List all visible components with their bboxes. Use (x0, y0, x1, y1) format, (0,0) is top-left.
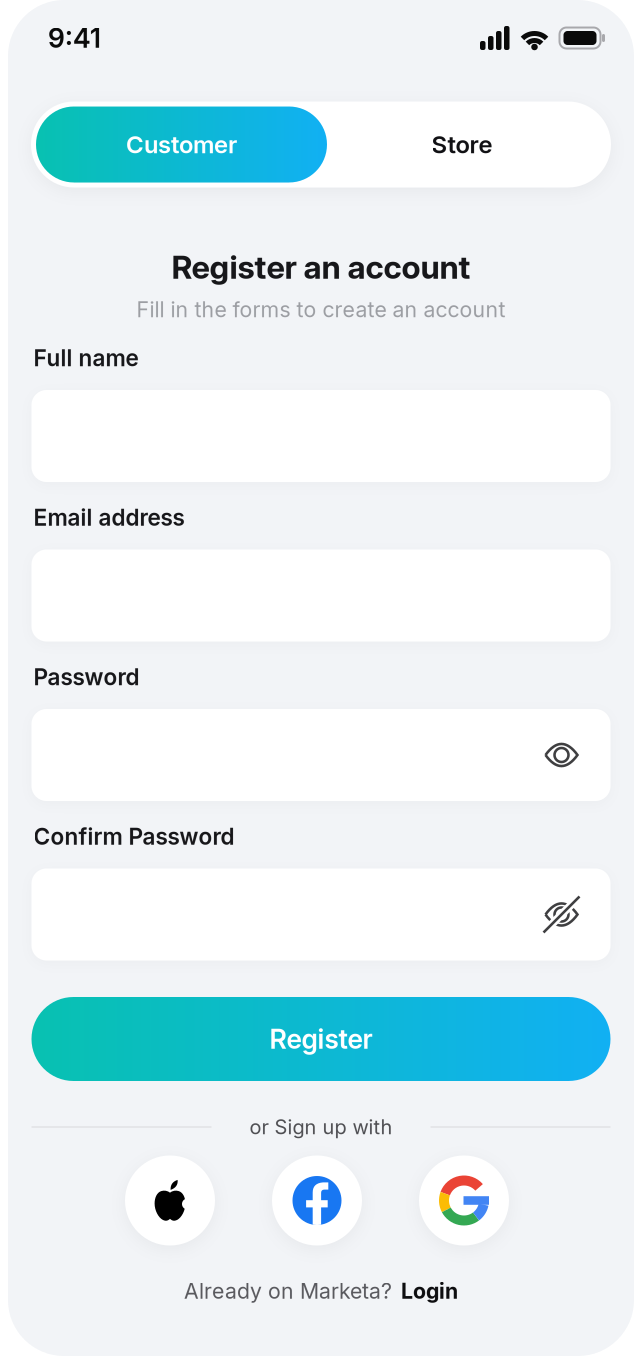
staticText: 9:41 (48, 22, 101, 54)
staticText: Store (431, 130, 492, 159)
staticText: Email address (33, 504, 184, 531)
staticText: Password (33, 664, 139, 690)
button[interactable]: Login (401, 1278, 458, 1304)
staticText: Customer (126, 130, 237, 159)
button[interactable]: Sign up with Facebook (272, 1155, 362, 1245)
staticText: Already on Marketa? (184, 1278, 392, 1304)
button[interactable]: Sign up with Google (419, 1155, 509, 1245)
staticText: Register (269, 1023, 372, 1055)
staticText: Login (401, 1278, 458, 1304)
staticText: or Sign up with (249, 1115, 392, 1139)
button[interactable]: Sign up with Apple (125, 1155, 215, 1245)
staticText: Fill in the forms to create an account (136, 297, 505, 322)
button[interactable]: Hide password (541, 894, 581, 934)
staticText: Register an account (171, 248, 470, 286)
button[interactable]: Show password (541, 735, 581, 775)
button[interactable]: Store (320, 106, 604, 182)
button[interactable]: Customer (36, 106, 327, 182)
button[interactable]: Register (31, 997, 610, 1081)
staticText: Full name (33, 345, 138, 371)
staticText: Confirm Password (33, 823, 234, 850)
